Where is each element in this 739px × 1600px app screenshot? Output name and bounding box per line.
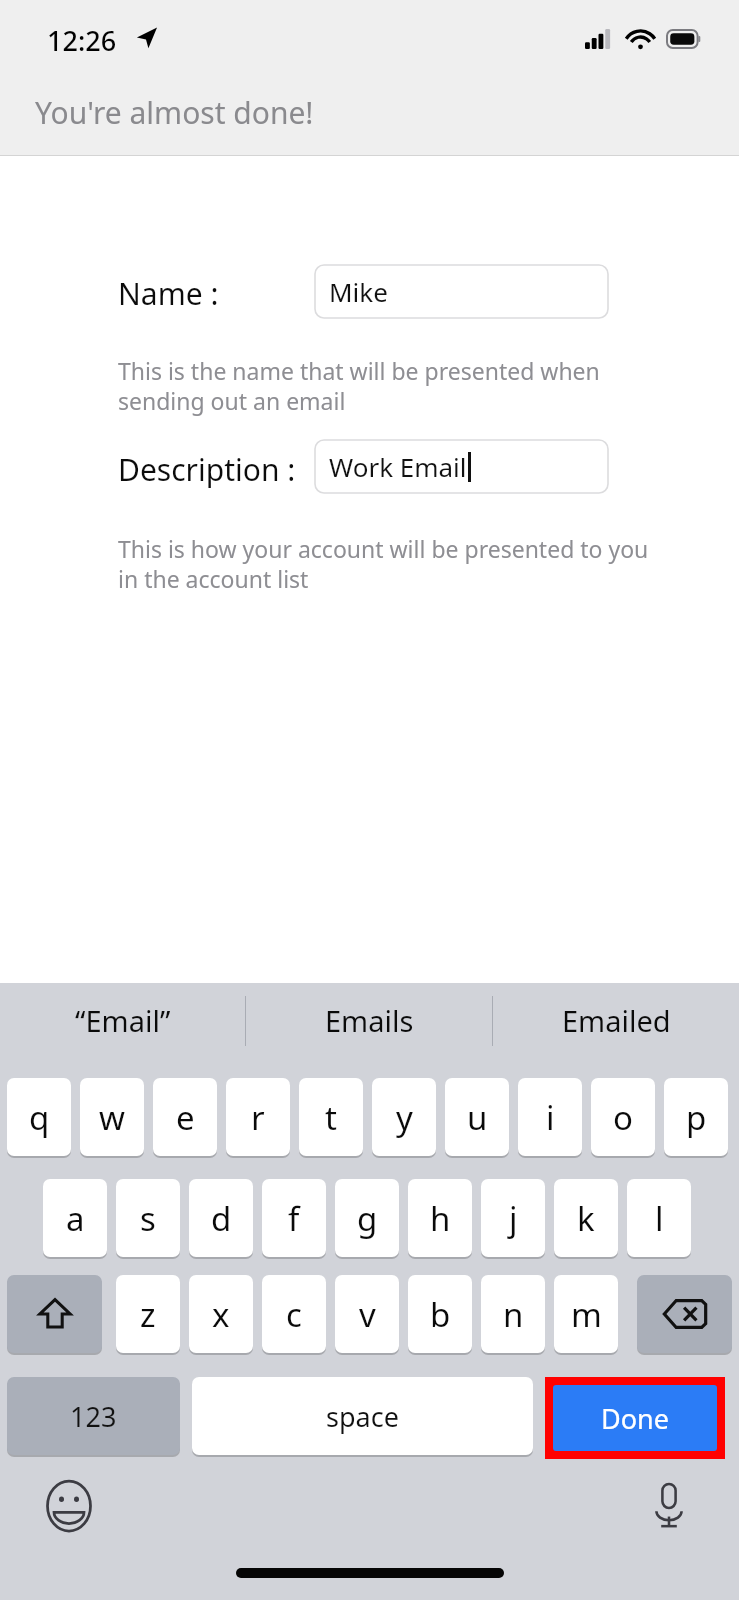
- button[interactable]: t: [299, 1078, 363, 1156]
- staticText: m: [571, 1292, 602, 1337]
- button[interactable]: x: [189, 1275, 253, 1353]
- staticText: g: [357, 1196, 378, 1241]
- staticText: p: [686, 1095, 707, 1140]
- button[interactable]: c: [262, 1275, 326, 1353]
- staticText: v: [359, 1292, 376, 1337]
- staticText: Name :: [118, 273, 219, 314]
- staticText: w: [99, 1095, 125, 1140]
- staticText: space: [326, 1398, 399, 1435]
- button[interactable]: e: [153, 1078, 217, 1156]
- button[interactable]: Emails: [246, 983, 492, 1058]
- button[interactable]: u: [445, 1078, 509, 1156]
- staticText: l: [655, 1196, 664, 1241]
- staticText: Done: [601, 1400, 669, 1437]
- button[interactable]: d: [189, 1179, 253, 1257]
- button[interactable]: Work Email: [315, 440, 608, 493]
- staticText: Work Email: [329, 449, 467, 484]
- staticText: y: [396, 1095, 413, 1140]
- button[interactable]: r: [226, 1078, 290, 1156]
- staticText: “Email”: [75, 1001, 171, 1040]
- staticText: o: [613, 1095, 633, 1140]
- button[interactable]: w: [80, 1078, 144, 1156]
- button[interactable]: Emailed: [493, 983, 739, 1058]
- staticText: e: [176, 1095, 195, 1140]
- staticText: Mike: [329, 274, 388, 309]
- button[interactable]: Done: [553, 1385, 717, 1451]
- staticText: u: [467, 1095, 488, 1140]
- button[interactable]: Backspace: [637, 1275, 732, 1353]
- button[interactable]: p: [664, 1078, 728, 1156]
- button[interactable]: z: [116, 1275, 180, 1353]
- staticText: t: [325, 1095, 337, 1140]
- staticText: 123: [70, 1398, 117, 1435]
- staticText: This is how your account will be present…: [118, 533, 649, 594]
- button[interactable]: Dictation: [640, 1477, 698, 1535]
- button[interactable]: l: [627, 1179, 691, 1257]
- button[interactable]: v: [335, 1275, 399, 1353]
- staticText: 12:26: [47, 22, 117, 59]
- button[interactable]: “Email”: [0, 983, 245, 1058]
- button[interactable]: s: [116, 1179, 180, 1257]
- button[interactable]: Shift: [7, 1275, 102, 1353]
- staticText: Description :: [118, 449, 296, 490]
- button[interactable]: f: [262, 1179, 326, 1257]
- button[interactable]: j: [481, 1179, 545, 1257]
- staticText: a: [66, 1196, 85, 1241]
- button[interactable]: o: [591, 1078, 655, 1156]
- button[interactable]: k: [554, 1179, 618, 1257]
- button[interactable]: Mike: [315, 265, 608, 318]
- button[interactable]: q: [7, 1078, 71, 1156]
- staticText: c: [286, 1292, 302, 1337]
- button[interactable]: i: [518, 1078, 582, 1156]
- staticText: Emailed: [562, 1001, 671, 1040]
- staticText: i: [546, 1095, 555, 1140]
- staticText: q: [29, 1095, 50, 1140]
- staticText: n: [503, 1292, 524, 1337]
- staticText: r: [251, 1095, 265, 1140]
- button[interactable]: Emoji keyboard: [40, 1477, 98, 1535]
- button[interactable]: space: [192, 1377, 533, 1455]
- button[interactable]: a: [43, 1179, 107, 1257]
- staticText: b: [430, 1292, 451, 1337]
- staticText: z: [140, 1292, 156, 1337]
- button[interactable]: h: [408, 1179, 472, 1257]
- button[interactable]: g: [335, 1179, 399, 1257]
- button[interactable]: m: [554, 1275, 618, 1353]
- staticText: x: [212, 1292, 230, 1337]
- staticText: k: [577, 1196, 595, 1241]
- staticText: Emails: [325, 1001, 414, 1040]
- staticText: j: [509, 1196, 518, 1241]
- staticText: f: [288, 1196, 300, 1241]
- button[interactable]: n: [481, 1275, 545, 1353]
- staticText: s: [140, 1196, 156, 1241]
- button[interactable]: b: [408, 1275, 472, 1353]
- staticText: h: [430, 1196, 451, 1241]
- button[interactable]: y: [372, 1078, 436, 1156]
- staticText: This is the name that will be presented …: [118, 355, 600, 416]
- staticText: You're almost done!: [35, 92, 314, 133]
- staticText: d: [211, 1196, 232, 1241]
- button[interactable]: 123: [7, 1377, 180, 1455]
